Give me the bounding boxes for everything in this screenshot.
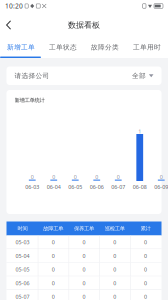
staticText: 0 bbox=[144, 293, 147, 300]
staticText: 06-07 bbox=[111, 183, 125, 191]
staticText: 0 bbox=[82, 239, 85, 246]
staticText: 0 bbox=[117, 173, 120, 180]
staticText: 0 bbox=[144, 266, 147, 273]
staticText: 数据看板 bbox=[68, 20, 100, 30]
staticText: 新增工单统计 bbox=[14, 97, 44, 104]
staticText: 0 bbox=[95, 173, 98, 180]
staticText: 请选择公司 bbox=[14, 72, 49, 80]
staticText: 时间 bbox=[17, 225, 27, 232]
staticText: 0 bbox=[113, 293, 116, 300]
staticText: 10:20 bbox=[5, 2, 23, 10]
button[interactable]: Back bbox=[0, 16, 17, 34]
staticText: 05-06 bbox=[15, 280, 29, 287]
staticText: 0 bbox=[74, 173, 77, 180]
staticText: 0 bbox=[144, 239, 147, 246]
staticText: 0 bbox=[31, 173, 34, 180]
staticText: 0 bbox=[52, 252, 55, 259]
staticText: 0 bbox=[113, 280, 116, 287]
staticText: 1 bbox=[138, 128, 141, 135]
button[interactable]: 故障分类 bbox=[84, 38, 126, 56]
staticText: 0 bbox=[52, 239, 55, 246]
staticText: 0 bbox=[144, 252, 147, 259]
staticText: 05-03 bbox=[15, 239, 29, 246]
staticText: 累计 bbox=[141, 225, 151, 232]
staticText: 0 bbox=[113, 266, 116, 273]
staticText: 06-03 bbox=[25, 183, 39, 191]
staticText: 全部 bbox=[132, 72, 146, 80]
staticText: 06-09 bbox=[154, 183, 168, 191]
staticText: 05-05 bbox=[15, 266, 29, 273]
staticText: 0 bbox=[160, 173, 163, 180]
staticText: 06-04 bbox=[47, 183, 61, 191]
staticText: 0 bbox=[52, 173, 55, 180]
staticText: 故障分类 bbox=[91, 43, 119, 51]
staticText: 新增工单 bbox=[7, 43, 35, 51]
staticText: 05-04 bbox=[15, 252, 29, 259]
staticText: 06-08 bbox=[133, 183, 147, 191]
staticText: 06-06 bbox=[90, 183, 104, 191]
staticText: 05-07 bbox=[15, 293, 29, 300]
staticText: 0 bbox=[82, 266, 85, 273]
staticText: 0 bbox=[52, 266, 55, 273]
staticText: 故障工单 bbox=[43, 225, 63, 232]
button[interactable]: 新增工单 bbox=[0, 38, 42, 56]
staticText: 0 bbox=[113, 252, 116, 259]
staticText: 06-05 bbox=[68, 183, 82, 191]
staticText: 0 bbox=[52, 280, 55, 287]
button[interactable]: 工单用时 bbox=[126, 38, 168, 56]
staticText: 0 bbox=[113, 239, 116, 246]
button[interactable]: 工单状态 bbox=[42, 38, 84, 56]
staticText: 工单状态 bbox=[49, 43, 77, 51]
staticText: 0 bbox=[144, 280, 147, 287]
staticText: 工单用时 bbox=[133, 43, 161, 51]
staticText: 0 bbox=[82, 280, 85, 287]
staticText: 保养工单 bbox=[74, 225, 94, 232]
button[interactable]: 请选择公司 bbox=[6, 66, 161, 85]
staticText: 巡检工单 bbox=[105, 225, 125, 232]
staticText: 0 bbox=[52, 293, 55, 300]
staticText: 0 bbox=[82, 293, 85, 300]
staticText: 0 bbox=[82, 252, 85, 259]
